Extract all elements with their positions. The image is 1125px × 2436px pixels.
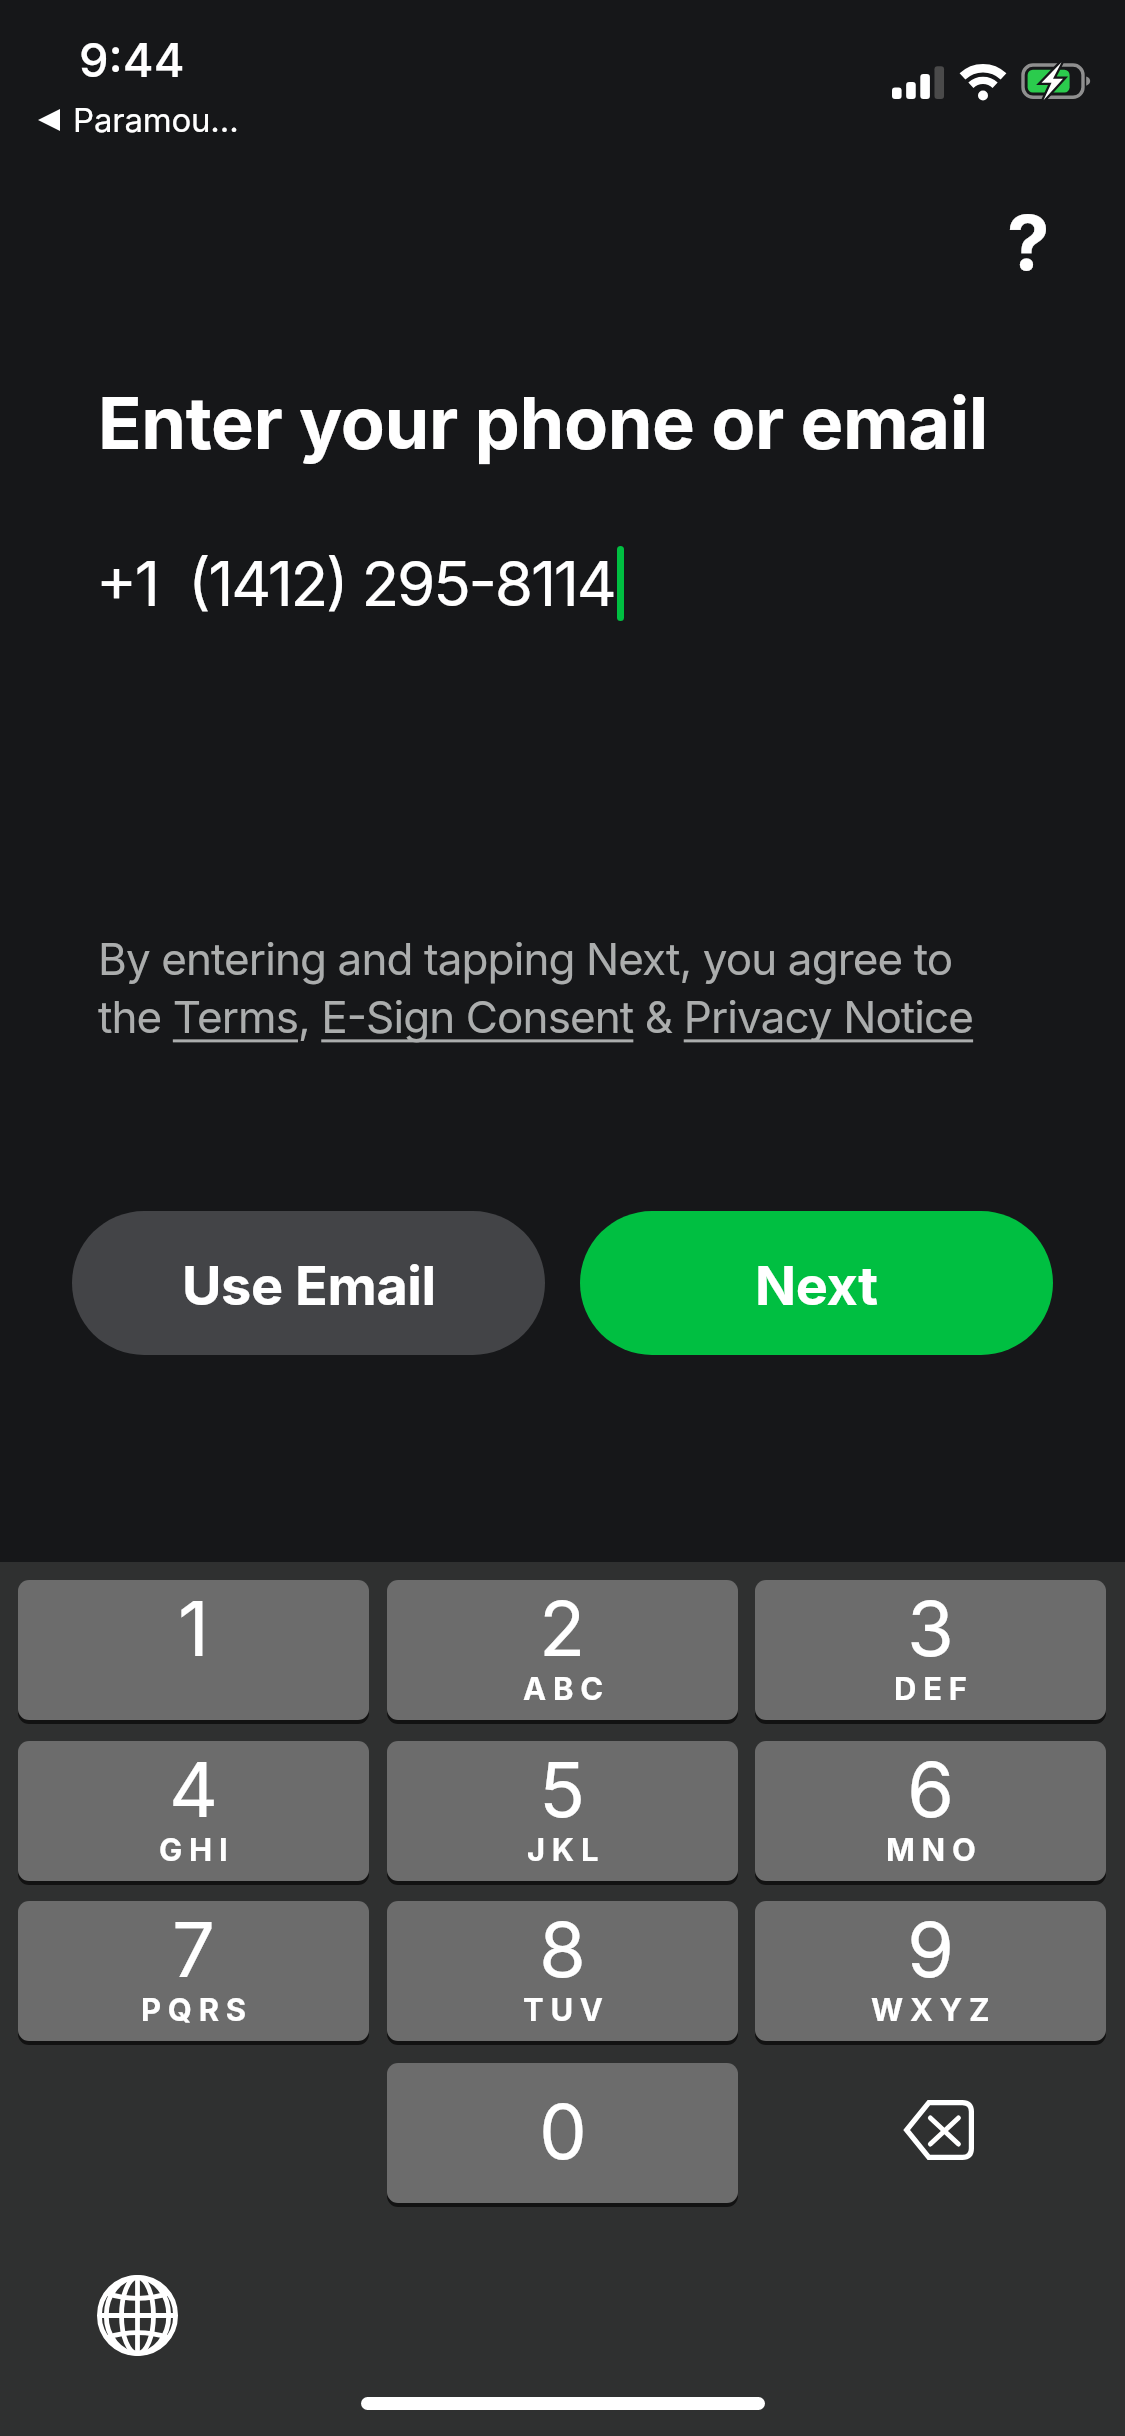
staticText: 4 xyxy=(169,1743,219,1835)
staticText: 1 xyxy=(178,1582,209,1674)
staticText: A B C xyxy=(523,1670,603,1708)
staticText: 5 xyxy=(539,1743,586,1835)
staticText: M N O xyxy=(886,1831,976,1869)
staticText: Use Email xyxy=(182,1253,436,1318)
staticText: D E F xyxy=(894,1670,967,1708)
staticText: 9:44 xyxy=(79,31,185,88)
button[interactable]: Help xyxy=(973,187,1083,297)
button[interactable]: 9 xyxy=(755,1901,1106,2041)
staticText: By entering and tapping Next, you agree … xyxy=(98,932,974,1044)
button[interactable]: 4 xyxy=(18,1741,369,1881)
staticText: 3 xyxy=(907,1582,954,1674)
button[interactable]: Change keyboard language xyxy=(77,2255,197,2375)
staticText: 0 xyxy=(539,2085,587,2177)
button[interactable]: 0 xyxy=(387,2063,738,2203)
staticText: P Q R S xyxy=(141,1991,246,2029)
staticText: J K L xyxy=(527,1831,599,1869)
staticText: Enter your phone or email xyxy=(98,379,988,466)
button[interactable]: 1 xyxy=(18,1580,369,1720)
staticText: 6 xyxy=(907,1743,955,1835)
staticText: G H I xyxy=(159,1831,228,1869)
staticText: +1 (1412) 295-8114 xyxy=(96,546,615,621)
button[interactable]: Next xyxy=(580,1211,1053,1355)
button[interactable]: Use Email xyxy=(72,1211,545,1355)
staticText: ? xyxy=(1007,196,1050,288)
staticText: Next xyxy=(755,1253,878,1318)
staticText: 2 xyxy=(539,1582,586,1674)
staticText: W X Y Z xyxy=(871,1991,990,2029)
staticText: 7 xyxy=(172,1903,216,1995)
staticText: 9 xyxy=(907,1903,955,1995)
button[interactable]: Delete xyxy=(858,2062,1020,2204)
staticText: Paramou… xyxy=(73,100,239,140)
button[interactable]: 6 xyxy=(755,1741,1106,1881)
staticText: T U V xyxy=(523,1991,603,2029)
button[interactable]: 2 xyxy=(387,1580,738,1720)
staticText: 8 xyxy=(539,1903,587,1995)
button[interactable]: 7 xyxy=(18,1901,369,2041)
button[interactable]: 3 xyxy=(755,1580,1106,1720)
button[interactable]: 8 xyxy=(387,1901,738,2041)
button[interactable]: 5 xyxy=(387,1741,738,1881)
